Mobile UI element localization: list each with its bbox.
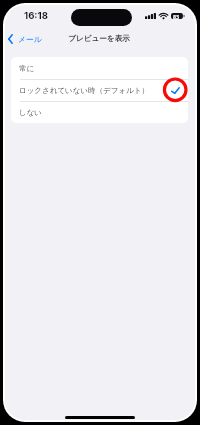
staticText: 16:18 xyxy=(24,10,48,22)
staticText: 常に xyxy=(19,64,35,73)
button[interactable]: しない xyxy=(11,101,188,123)
staticText: ロックされていない時（デフォルト） xyxy=(19,86,149,95)
staticText: プレビューを表示 xyxy=(68,34,130,44)
other: Selected xyxy=(171,87,180,94)
staticText: 83 xyxy=(173,13,180,19)
staticText: しない xyxy=(19,108,43,117)
button[interactable]: ロックされていない時（デフォルト） xyxy=(11,79,188,101)
button[interactable]: メール xyxy=(5,29,47,45)
staticText: メール xyxy=(18,34,42,44)
button[interactable]: 常に xyxy=(11,57,188,79)
